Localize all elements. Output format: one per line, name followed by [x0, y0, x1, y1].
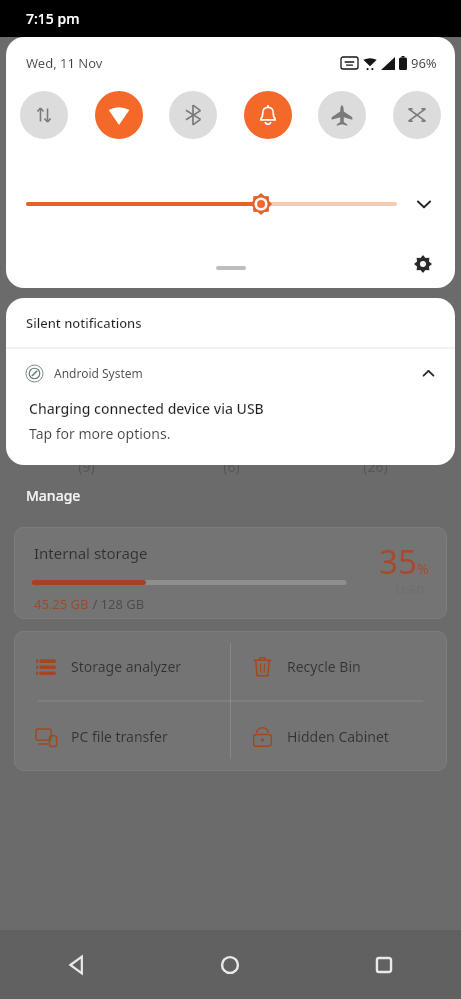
staticText: 45.25 GB: [34, 595, 89, 613]
staticText: Hidden Cabinet: [287, 727, 389, 746]
button[interactable]: Hidden Cabinet: [230, 701, 447, 771]
button[interactable]: Recents: [307, 930, 461, 999]
staticText: Android System: [54, 365, 143, 381]
button[interactable]: Documents: [14, 430, 159, 476]
staticText: / 128 GB: [89, 595, 145, 613]
staticText: (6): [223, 457, 240, 476]
button[interactable]: Recycle Bin: [230, 631, 447, 701]
staticText: (9): [78, 457, 95, 476]
staticText: Recycle Bin: [287, 657, 361, 676]
button[interactable]: Expand quick settings: [407, 187, 441, 221]
staticText: Internal storage: [34, 543, 148, 563]
button[interactable]: Toggle: [393, 91, 441, 139]
button[interactable]: Notifications: [244, 91, 292, 139]
button[interactable]: Recent: [303, 430, 447, 476]
staticText: Storage analyzer: [71, 657, 182, 676]
staticText: Tap for more options.: [29, 424, 171, 443]
staticText: (26): [363, 457, 388, 476]
button[interactable]: Airplane mode: [318, 91, 366, 139]
staticText: PC file transfer: [71, 727, 168, 746]
button[interactable]: Wed, 11 Nov: [26, 54, 103, 72]
button[interactable]: Home: [153, 930, 307, 999]
button[interactable]: Settings: [405, 246, 441, 282]
button[interactable]: Wi-Fi: [95, 91, 143, 139]
button[interactable]: PC file transfer: [14, 701, 230, 771]
button[interactable]: [28, 189, 395, 219]
staticText: Manage: [26, 486, 81, 505]
staticText: Silent notifications: [26, 314, 142, 332]
staticText: 35: [379, 539, 417, 584]
button[interactable]: Internet data: [20, 91, 68, 139]
button[interactable]: Bluetooth: [169, 91, 217, 139]
button[interactable]: Internal storage: [14, 527, 447, 619]
staticText: Documents: [49, 430, 125, 449]
staticText: 7:15 pm: [26, 9, 80, 28]
button[interactable]: Back: [0, 930, 153, 999]
staticText: Charging connected device via USB: [29, 399, 264, 418]
button[interactable]: Android System: [6, 349, 455, 443]
staticText: %: [417, 559, 429, 578]
button[interactable]: Downloads: [159, 430, 303, 476]
staticText: 96%: [411, 54, 437, 72]
button[interactable]: Silent notifications: [6, 298, 455, 348]
button[interactable]: Storage analyzer: [14, 631, 230, 701]
